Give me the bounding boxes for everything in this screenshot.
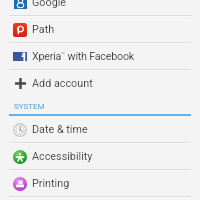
staticText: Accessibility [32,150,93,163]
button[interactable]: Xperia™ with Facebook [0,43,200,70]
staticText: Printing [32,177,70,190]
staticText: Google [32,0,67,9]
other: Add account [15,78,26,89]
button[interactable]: Add account [0,70,200,97]
staticText: SYSTEM [14,102,45,111]
button[interactable]: Google [0,0,200,16]
button[interactable]: Printing [0,170,200,197]
button[interactable]: Accessibility [0,143,200,170]
staticText: Path [32,23,55,36]
button[interactable]: Date & time [0,116,200,143]
staticText: Date & time [32,123,88,136]
button[interactable]: Path [0,16,200,43]
staticText: Add account [32,77,93,90]
staticText: Xperia™ with Facebook [32,50,135,63]
